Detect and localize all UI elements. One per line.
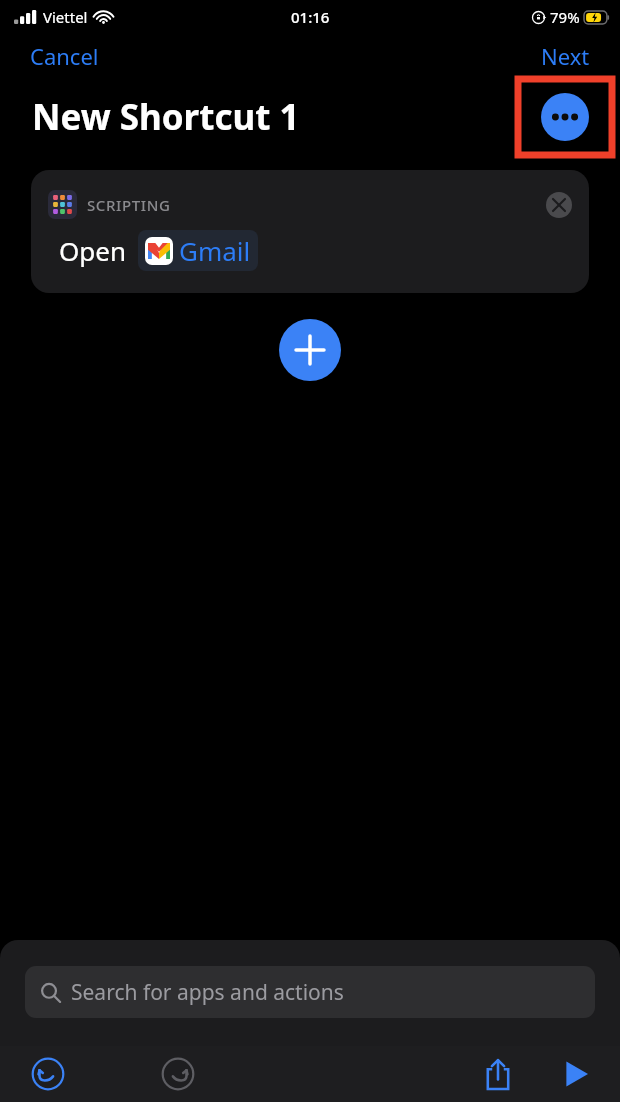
staticText: Gmail <box>179 233 251 268</box>
staticText: Search for apps and actions <box>71 978 344 1007</box>
staticText: Viettel <box>43 7 88 27</box>
button[interactable]: Gmail <box>138 230 258 271</box>
staticText: Next <box>541 41 590 71</box>
button[interactable]: Remove action <box>546 192 572 218</box>
staticText: SCRIPTING <box>87 195 171 215</box>
button[interactable]: Search for apps and actions <box>25 966 595 1018</box>
button[interactable]: Redo <box>152 1048 204 1100</box>
staticText: Cancel <box>30 41 99 71</box>
button[interactable]: Next <box>533 37 598 75</box>
button[interactable]: Cancel <box>22 37 107 75</box>
button[interactable]: More options <box>541 93 589 141</box>
button[interactable]: SCRIPTING <box>31 170 589 293</box>
staticText: 79% <box>550 7 580 27</box>
staticText: New Shortcut 1 <box>32 93 300 141</box>
button[interactable]: Undo <box>22 1048 74 1100</box>
button[interactable]: Share <box>472 1048 524 1100</box>
staticText: 01:16 <box>291 7 330 27</box>
button[interactable]: Run shortcut <box>550 1048 602 1100</box>
button[interactable]: Add action <box>279 319 341 381</box>
staticText: Open <box>59 233 127 268</box>
